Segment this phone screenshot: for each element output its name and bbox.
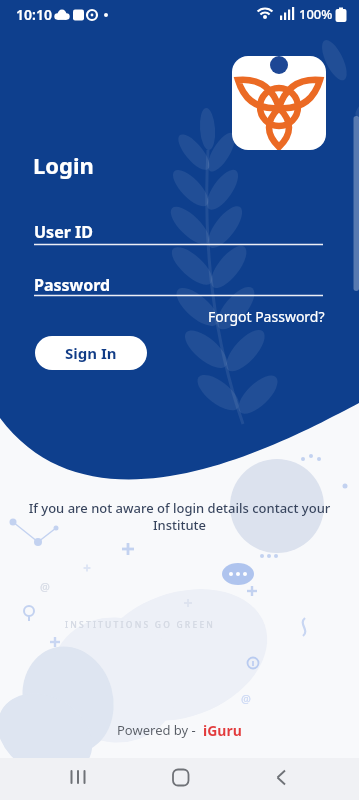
staticText: User ID (34, 221, 93, 243)
staticText: @ (241, 691, 251, 706)
staticText: 10:10 (16, 5, 52, 24)
staticText: Sign In (65, 343, 117, 363)
staticText: Login (33, 150, 94, 180)
button[interactable] (119, 760, 239, 800)
button[interactable]: Forgot Password? (208, 307, 325, 326)
staticText: If you are not aware of login details co… (0, 499, 359, 534)
staticText: 100% (299, 5, 333, 23)
staticText: I N S T I T U T I O N S G O G R E E N (65, 619, 213, 631)
staticText: Powered by - (117, 721, 203, 739)
button[interactable] (239, 760, 359, 800)
button[interactable]: Password (34, 274, 323, 298)
button[interactable]: Sign In (35, 336, 147, 370)
button[interactable]: User ID (34, 221, 323, 247)
staticText: iGuru (203, 721, 242, 740)
staticText: @ (40, 579, 50, 594)
button[interactable] (0, 760, 119, 800)
staticText: Forgot Password? (208, 307, 325, 326)
staticText: Password (34, 274, 111, 296)
